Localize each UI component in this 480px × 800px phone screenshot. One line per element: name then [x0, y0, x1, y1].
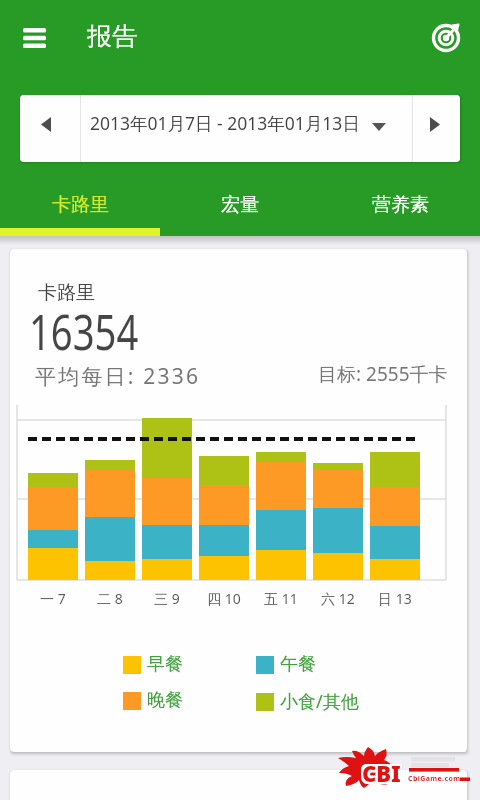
staticText: 日 13 [378, 589, 412, 608]
staticText: CBI [362, 758, 401, 788]
staticText: 二 8 [97, 589, 123, 608]
staticText: CBI [364, 756, 403, 786]
staticText: 2013年01月7日 - 2013年01月13日 [90, 111, 360, 135]
staticText: 卡路里 [38, 281, 95, 305]
staticText: CBI [364, 758, 403, 788]
staticText: CBI [360, 760, 399, 790]
staticText: 小食/其他 [280, 689, 359, 714]
staticText: 16354 [29, 298, 139, 365]
staticText: 晚餐 [147, 689, 183, 712]
staticText: CBI [364, 760, 403, 790]
staticText: CBI [362, 760, 401, 790]
staticText: CBI [362, 756, 401, 786]
staticText: 三 9 [154, 589, 180, 608]
staticText: 早餐 [147, 653, 183, 676]
staticText: 平均每日: 2336 [35, 362, 201, 391]
staticText: CBI [360, 756, 399, 786]
staticText: 目标: 2555千卡 [318, 361, 448, 387]
staticText: 宏量 [221, 193, 259, 217]
staticText: 六 12 [321, 589, 355, 608]
staticText: 卡路里 [52, 193, 109, 217]
staticText: CbiGame.com [408, 774, 461, 784]
staticText: 五 11 [264, 589, 298, 608]
staticText: 四 10 [207, 589, 241, 608]
staticText: 一 7 [40, 589, 66, 608]
staticText: 报告 [87, 21, 137, 52]
staticText: 营养素 [372, 193, 429, 217]
staticText: CBI [360, 758, 399, 788]
staticText: 午餐 [280, 653, 316, 676]
